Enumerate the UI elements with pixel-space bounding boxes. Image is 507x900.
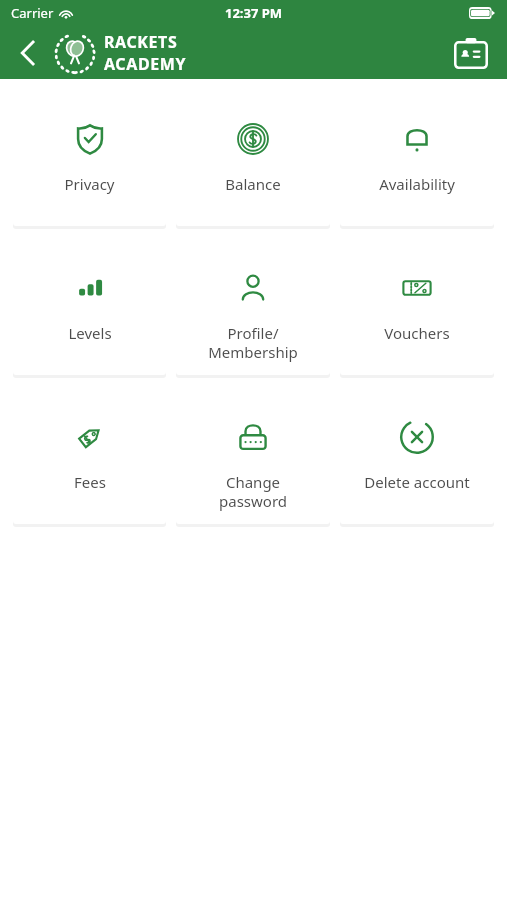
staticText: ACADEMY [104, 53, 187, 75]
button[interactable]: Change password [176, 388, 330, 524]
staticText: Availability [379, 174, 455, 194]
staticText: Profile/ Membership [208, 323, 298, 362]
staticText: Fees [74, 472, 106, 492]
button[interactable]: Delete account [340, 388, 494, 524]
staticText: Privacy [64, 174, 115, 194]
button[interactable]: Back [8, 33, 48, 73]
staticText: Delete account [364, 472, 470, 492]
button[interactable]: Profile/ Membership [176, 239, 330, 375]
button[interactable]: Levels [13, 239, 166, 375]
staticText: Carrier [11, 4, 54, 22]
staticText: Vouchers [384, 323, 450, 343]
staticText: 12:37 PM [225, 4, 283, 22]
staticText: Balance [225, 174, 281, 194]
button[interactable]: Balance [176, 90, 330, 226]
button[interactable]: Availability [340, 90, 494, 226]
button[interactable]: Fees [13, 388, 166, 524]
staticText: Change password [219, 472, 287, 511]
button[interactable]: Membership card [449, 31, 493, 75]
button[interactable]: Privacy [13, 90, 166, 226]
button[interactable]: Vouchers [340, 239, 494, 375]
staticText: RACKETS [104, 31, 178, 53]
staticText: Levels [68, 323, 112, 343]
